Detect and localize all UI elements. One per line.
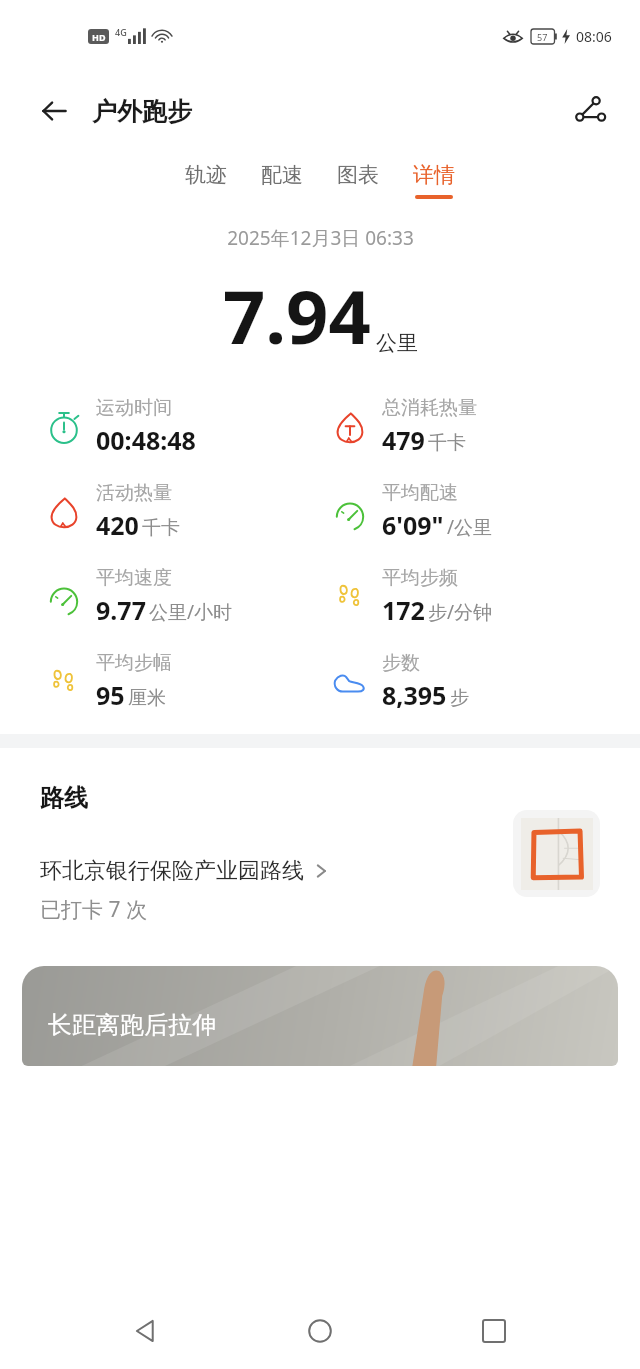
- staticText: 平均配速: [382, 481, 458, 505]
- staticText: 479: [382, 423, 425, 457]
- staticText: 厘米: [128, 686, 166, 710]
- button[interactable]: 平均步幅: [44, 651, 320, 712]
- button[interactable]: Share: [566, 87, 614, 135]
- staticText: 运动时间: [96, 396, 172, 420]
- button[interactable]: Recents: [466, 1303, 522, 1359]
- button[interactable]: Home: [292, 1303, 348, 1359]
- staticText: 户外跑步: [92, 96, 192, 127]
- staticText: 图表: [337, 162, 379, 188]
- staticText: 95: [96, 678, 125, 712]
- button[interactable]: Back: [118, 1303, 174, 1359]
- staticText: 9.77: [96, 593, 146, 627]
- staticText: 08:06: [576, 27, 612, 46]
- staticText: 路线: [40, 783, 88, 813]
- staticText: 千卡: [142, 516, 180, 540]
- staticText: 步: [450, 686, 469, 710]
- staticText: 活动热量: [96, 481, 172, 505]
- staticText: 57: [537, 31, 548, 43]
- button[interactable]: 总消耗热量: [330, 396, 640, 457]
- button[interactable]: 平均步频: [330, 566, 640, 627]
- staticText: 平均步幅: [96, 651, 172, 675]
- button[interactable]: 平均配速: [330, 481, 640, 542]
- staticText: 6'09": [382, 508, 444, 542]
- staticText: 轨迹: [185, 162, 227, 188]
- staticText: 步数: [382, 651, 420, 675]
- staticText: 步/分钟: [428, 599, 493, 625]
- button[interactable]: 轨迹: [168, 158, 244, 203]
- button[interactable]: Back: [30, 88, 192, 134]
- button[interactable]: 长距离跑后拉伸: [22, 966, 618, 1066]
- button[interactable]: 路线: [0, 748, 640, 958]
- staticText: 420: [96, 508, 139, 542]
- button[interactable]: 活动热量: [44, 481, 320, 542]
- staticText: 00:48:48: [96, 423, 196, 457]
- staticText: 172: [382, 593, 425, 627]
- staticText: 公里/小时: [149, 599, 233, 625]
- button[interactable]: 图表: [320, 158, 396, 203]
- staticText: 总消耗热量: [382, 396, 477, 420]
- button[interactable]: 步数: [330, 651, 640, 712]
- staticText: 详情: [413, 162, 455, 188]
- staticText: 环北京银行保险产业园路线: [40, 857, 304, 885]
- button[interactable]: 配速: [244, 158, 320, 203]
- staticText: 千卡: [428, 431, 466, 455]
- staticText: 平均速度: [96, 566, 172, 590]
- staticText: 2025年12月3日 06:33: [227, 225, 414, 251]
- staticText: /公里: [447, 514, 493, 540]
- button[interactable]: 平均速度: [44, 566, 320, 627]
- staticText: 4G: [115, 26, 127, 38]
- staticText: 7.94: [223, 265, 371, 366]
- button[interactable]: 运动时间: [44, 396, 320, 457]
- staticText: 已打卡 7 次: [40, 895, 147, 924]
- staticText: 公里: [376, 330, 418, 356]
- staticText: 配速: [261, 162, 303, 188]
- staticText: 平均步频: [382, 566, 458, 590]
- staticText: HD: [92, 31, 106, 43]
- button[interactable]: 详情: [396, 158, 472, 203]
- staticText: 8,395: [382, 678, 447, 712]
- other: Back: [30, 88, 76, 134]
- staticText: 长距离跑后拉伸: [48, 1010, 216, 1040]
